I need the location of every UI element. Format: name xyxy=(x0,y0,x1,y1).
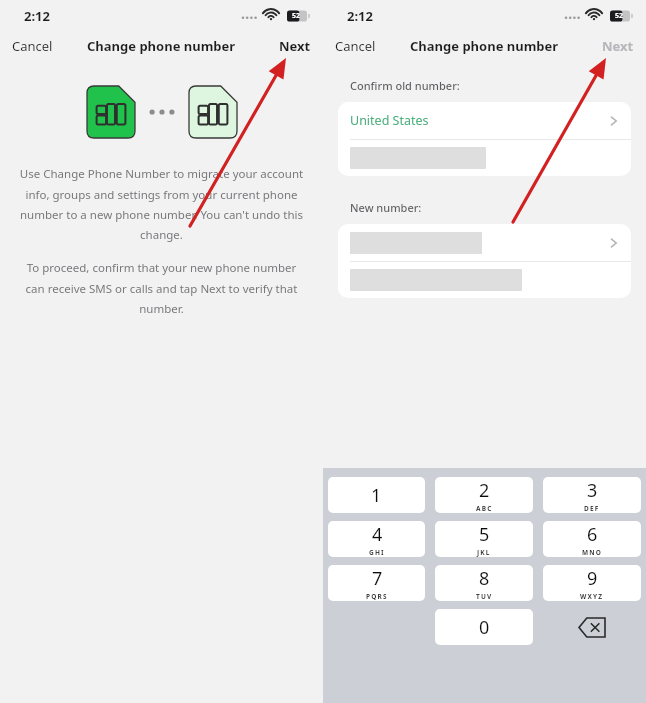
button[interactable]: Next xyxy=(267,33,323,59)
button[interactable]: 3 xyxy=(543,477,641,513)
staticText: New number: xyxy=(350,200,422,215)
staticText: 0 xyxy=(479,615,490,640)
staticText: Change phone number xyxy=(410,37,559,55)
staticText: 2:12 xyxy=(24,7,50,25)
staticText: GHI xyxy=(369,548,385,557)
staticText: Next xyxy=(279,37,311,55)
staticText: 52 xyxy=(615,11,624,21)
staticText: Next xyxy=(602,37,634,55)
staticText: WXYZ xyxy=(580,592,604,601)
staticText: Cancel xyxy=(12,37,53,55)
button[interactable]: 2 xyxy=(435,477,533,513)
staticText: 2 xyxy=(479,478,490,503)
staticText: 2:12 xyxy=(347,7,373,25)
button[interactable] xyxy=(338,224,631,261)
button[interactable]: United States xyxy=(338,102,631,139)
button[interactable] xyxy=(338,262,631,298)
button[interactable]: 9 xyxy=(543,565,641,601)
button[interactable]: 4 xyxy=(328,521,425,557)
staticText: 9 xyxy=(587,566,598,591)
staticText: 5 xyxy=(479,522,490,547)
button[interactable]: 1 xyxy=(328,477,425,513)
button[interactable]: Backspace xyxy=(538,605,646,649)
staticText: Confirm old number: xyxy=(350,78,460,93)
staticText: To proceed, confirm that your new phone … xyxy=(18,260,305,316)
button[interactable]: 5 xyxy=(435,521,533,557)
staticText: TUV xyxy=(476,592,493,601)
staticText: 8 xyxy=(479,566,490,591)
button[interactable]: 6 xyxy=(543,521,641,557)
button[interactable]: Cancel xyxy=(0,33,65,59)
staticText: JKL xyxy=(477,548,491,557)
staticText: 7 xyxy=(372,566,383,591)
staticText: ABC xyxy=(476,504,493,513)
staticText: DEF xyxy=(584,504,600,513)
button[interactable]: Cancel xyxy=(323,33,388,59)
staticText: 52 xyxy=(292,11,301,21)
button[interactable]: Next xyxy=(590,33,646,59)
staticText: Change phone number xyxy=(87,37,236,55)
staticText: Use Change Phone Number to migrate your … xyxy=(18,166,305,242)
staticText: PQRS xyxy=(366,592,388,601)
staticText: Cancel xyxy=(335,37,376,55)
staticText: 4 xyxy=(372,522,383,547)
staticText: 6 xyxy=(587,522,598,547)
button[interactable]: 0 xyxy=(435,609,533,645)
button[interactable]: 7 xyxy=(328,565,425,601)
button[interactable] xyxy=(338,140,631,176)
staticText: 3 xyxy=(587,478,598,503)
staticText: MNO xyxy=(582,548,603,557)
button[interactable]: 8 xyxy=(435,565,533,601)
staticText: 1 xyxy=(371,483,382,508)
staticText: United States xyxy=(350,112,429,129)
